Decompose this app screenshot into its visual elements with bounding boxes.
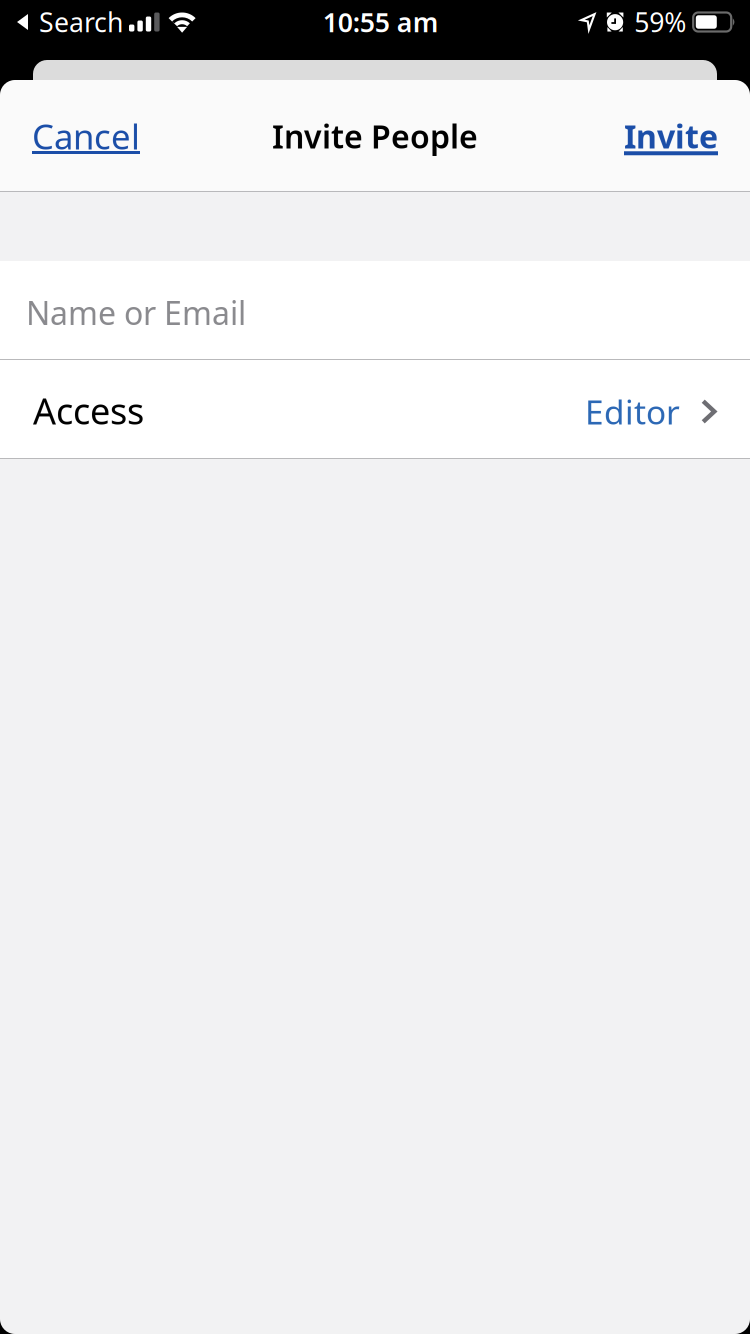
staticText: Access bbox=[33, 387, 144, 434]
staticText: Cancel bbox=[32, 113, 140, 159]
button[interactable]: Name or Email bbox=[0, 261, 750, 360]
staticText: Invite bbox=[624, 115, 718, 157]
button[interactable]: Cancel bbox=[0, 80, 164, 192]
button[interactable]: Invite bbox=[600, 80, 750, 192]
button[interactable]: Access bbox=[0, 360, 750, 459]
staticText: 10:55 am bbox=[323, 4, 439, 40]
staticText: Invite People bbox=[272, 115, 478, 157]
staticText: Name or Email bbox=[26, 291, 246, 334]
staticText: Editor bbox=[585, 389, 680, 434]
staticText: 59% bbox=[634, 4, 686, 40]
staticText: Search bbox=[39, 4, 123, 40]
